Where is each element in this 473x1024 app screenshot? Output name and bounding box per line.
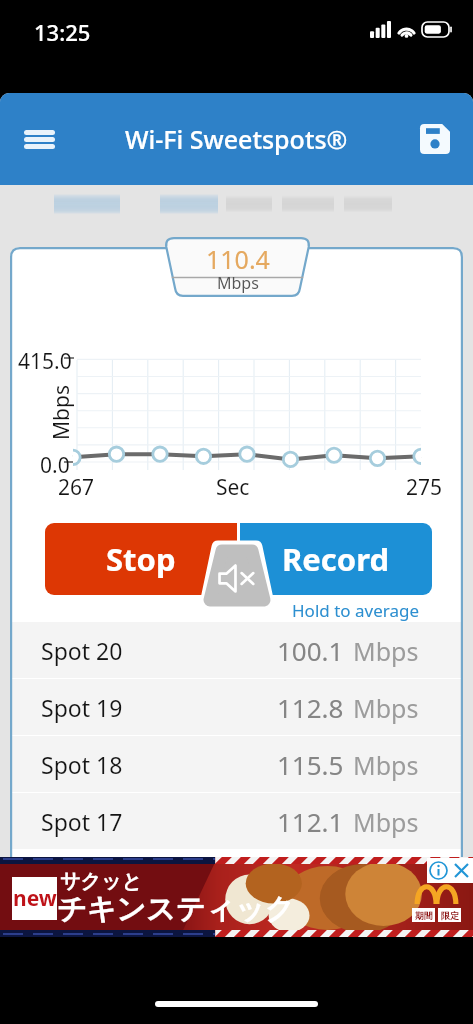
- button[interactable]: Spot 20: [10, 622, 463, 678]
- staticText: 110.4: [206, 242, 270, 276]
- button[interactable]: new: [0, 857, 473, 937]
- button[interactable]: Menu: [11, 117, 67, 161]
- staticText: Mbps: [217, 272, 259, 294]
- staticText: チキンスティック: [57, 891, 295, 928]
- button[interactable]: Spot 18: [10, 736, 463, 792]
- button[interactable]: Spot 17: [10, 793, 463, 849]
- staticText: 100.1: [277, 633, 344, 668]
- staticText: 115.5: [277, 747, 344, 782]
- button[interactable]: Close ad: [452, 861, 471, 880]
- staticText: 0.0: [40, 451, 70, 480]
- staticText: Mbps: [353, 691, 419, 725]
- staticText: 限定: [441, 910, 459, 921]
- button[interactable]: Spot 19: [10, 679, 463, 735]
- staticText: Stop: [106, 538, 176, 580]
- staticText: Spot 20: [41, 635, 123, 666]
- staticText: Mbps: [353, 805, 419, 839]
- button[interactable]: Mute: [201, 543, 273, 610]
- staticText: 期間: [415, 910, 433, 921]
- staticText: サクッと: [60, 869, 142, 894]
- staticText: 275: [406, 473, 443, 502]
- staticText: Mbps: [353, 634, 419, 668]
- button[interactable]: Stop: [45, 523, 237, 595]
- staticText: Sec: [216, 473, 250, 502]
- staticText: 112.8: [277, 690, 344, 725]
- staticText: Wi-Fi Sweetspots®: [125, 122, 348, 156]
- staticText: Hold to average: [292, 599, 420, 622]
- staticText: 415.0: [18, 347, 72, 376]
- staticText: Spot 19: [41, 692, 123, 723]
- button[interactable]: Ad info: [429, 861, 448, 880]
- staticText: Record: [282, 538, 390, 580]
- staticText: 267: [58, 473, 95, 502]
- staticText: Mbps: [353, 748, 419, 782]
- staticText: 13:25: [34, 17, 91, 47]
- staticText: Spot 18: [41, 749, 123, 780]
- staticText: 112.1: [277, 804, 344, 839]
- button[interactable]: Record: [240, 523, 432, 595]
- staticText: Mbps: [46, 381, 75, 443]
- staticText: Spot 17: [41, 806, 123, 837]
- staticText: new: [13, 884, 57, 913]
- button[interactable]: Save: [407, 117, 463, 161]
